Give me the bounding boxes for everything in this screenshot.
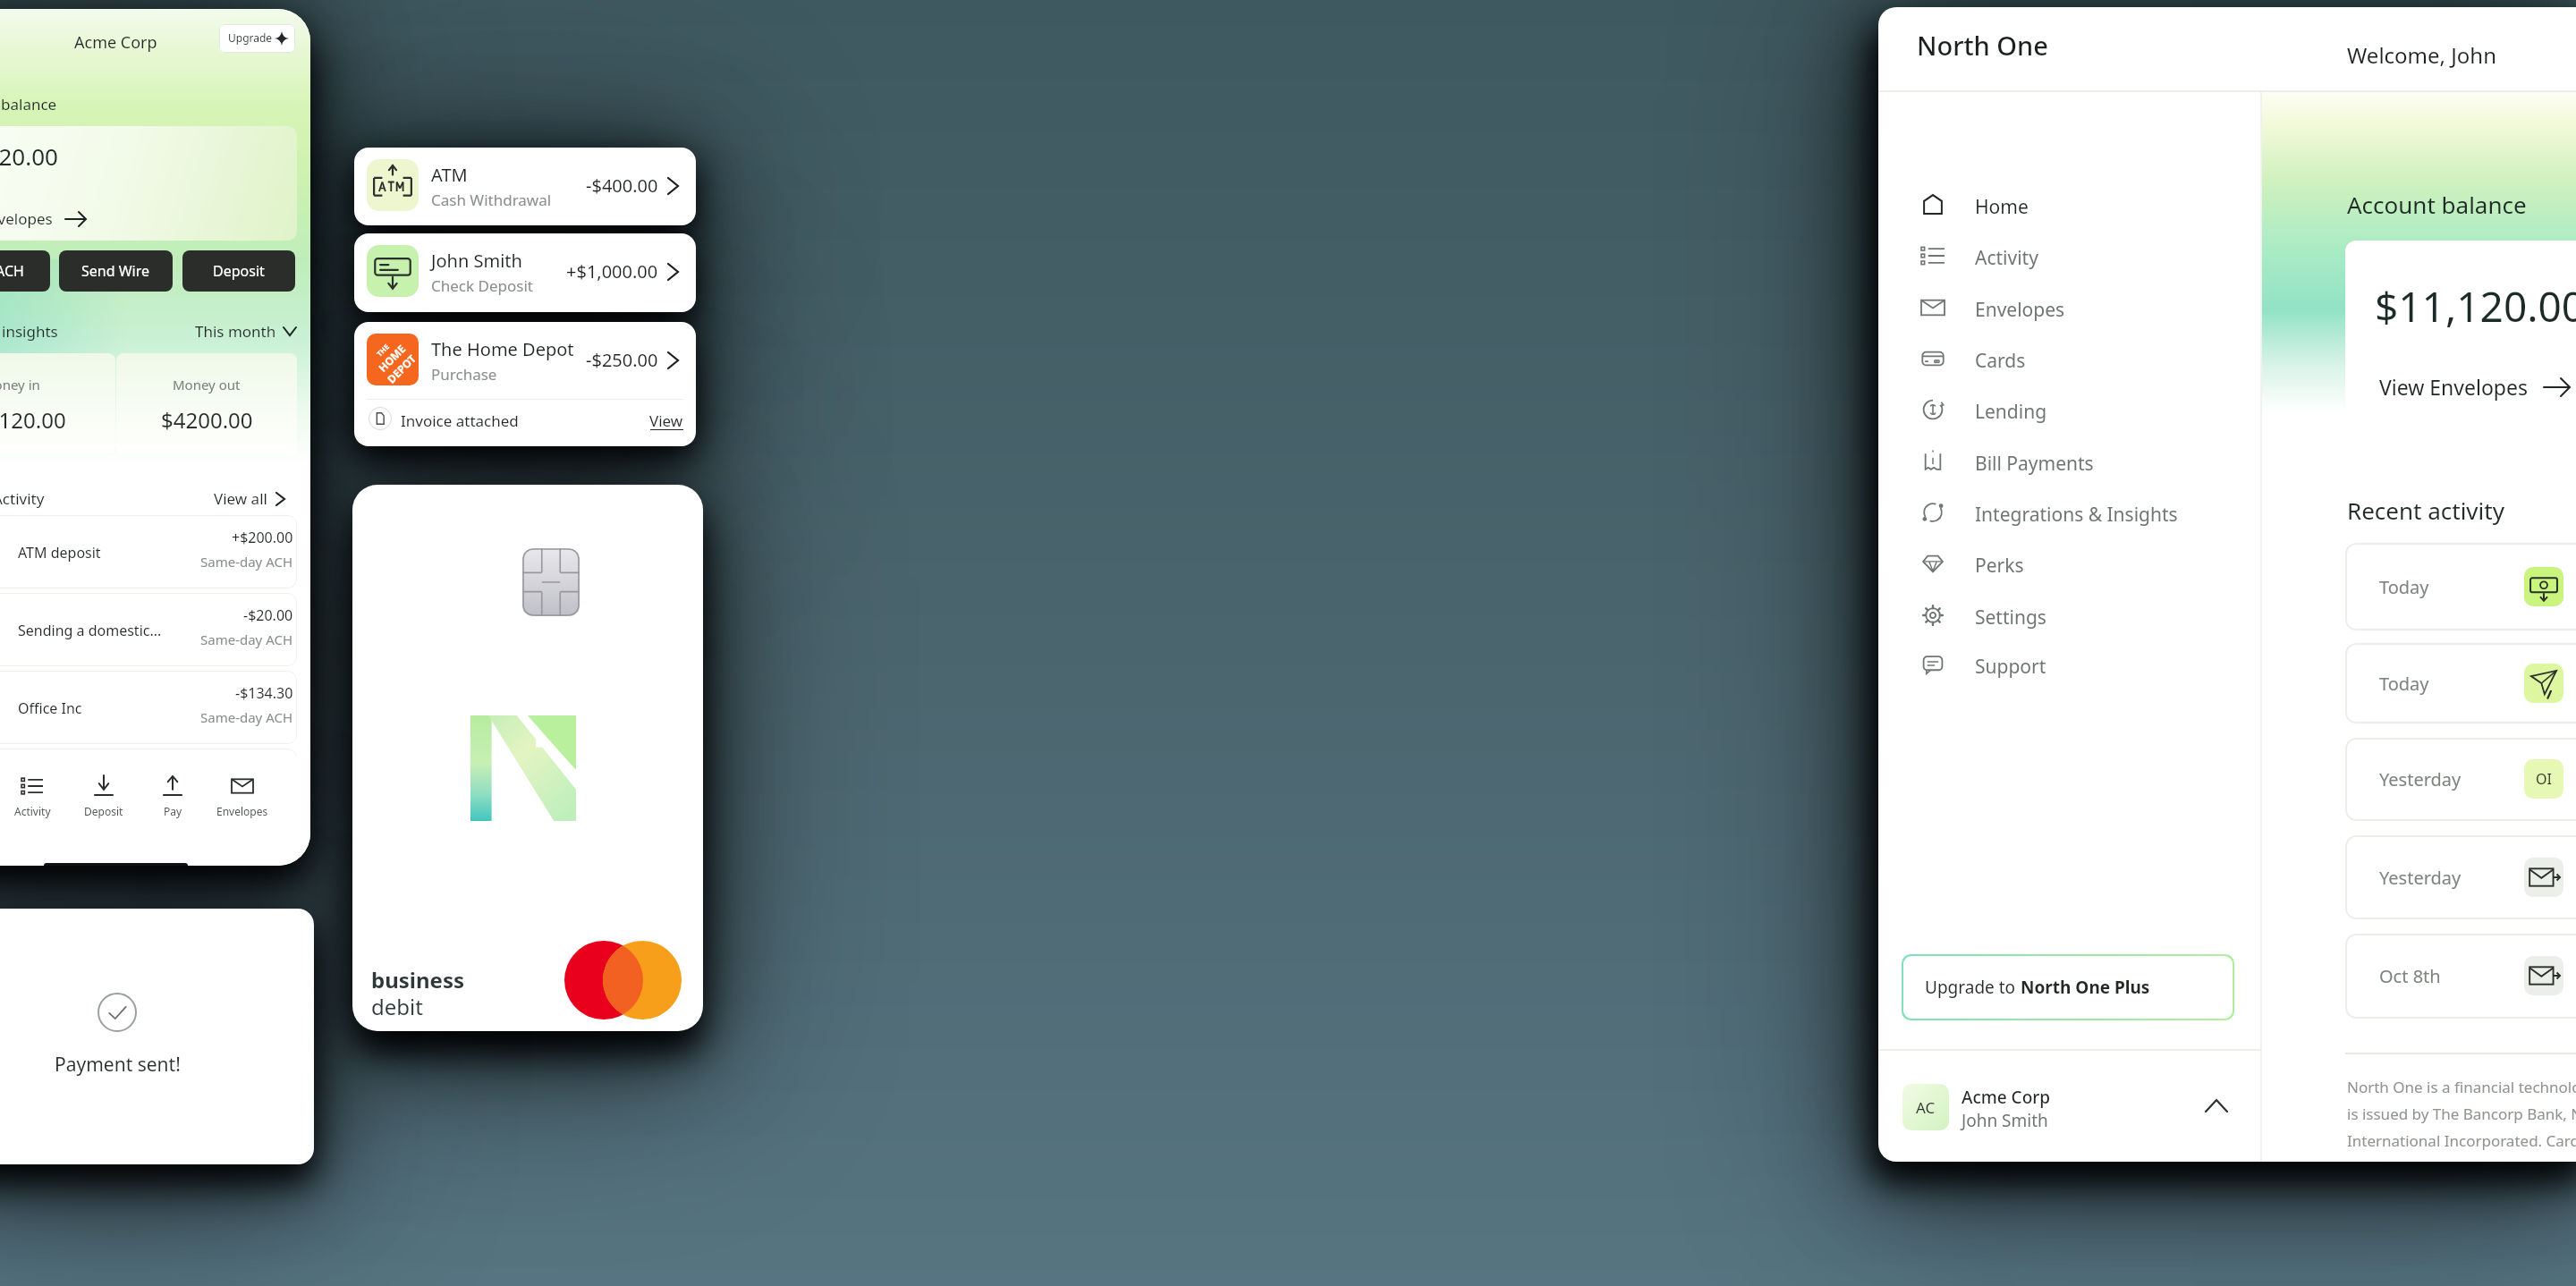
staticText: +$1,000.00 — [566, 259, 658, 283]
staticText: ATM — [431, 163, 468, 187]
staticText: Cards — [1975, 348, 2026, 374]
button[interactable]: View all — [214, 488, 284, 509]
button[interactable]: Envelopes — [208, 772, 276, 838]
staticText: Purchase — [431, 364, 497, 385]
staticText: Same-day ACH — [200, 630, 293, 648]
staticText: AC — [1916, 1097, 1936, 1118]
button[interactable]: Today — [2345, 643, 2576, 723]
staticText: Integrations & Insights — [1975, 502, 2178, 528]
button[interactable]: Integrations & Insights — [1905, 488, 2254, 537]
staticText: debit — [371, 992, 423, 1021]
button[interactable]: Oct 8th — [2345, 934, 2576, 1019]
staticText: OI — [2536, 769, 2552, 789]
staticText: Today — [2379, 672, 2429, 696]
staticText: North One Plus — [2021, 976, 2150, 999]
staticText: Same-day ACH — [200, 708, 293, 726]
staticText: THE — [374, 341, 391, 358]
staticText: Cash Withdrawal — [431, 190, 552, 210]
staticText: Recent activity — [2347, 495, 2504, 526]
button[interactable] — [644, 402, 689, 438]
button[interactable]: Pay — [139, 772, 207, 838]
staticText: DEPOT — [384, 351, 419, 385]
button[interactable]: View Envelopes — [2379, 373, 2571, 401]
staticText: -$134.30 — [235, 683, 293, 703]
staticText: Activity — [14, 804, 51, 818]
staticText: Yesterday — [2379, 866, 2462, 890]
button[interactable]: ATM — [354, 148, 696, 225]
staticText: Welcome, John — [2347, 40, 2496, 70]
staticText: -$400.00 — [586, 173, 658, 198]
staticText: $11,120.00 — [0, 140, 58, 172]
staticText: Envelopes — [1975, 297, 2065, 323]
staticText: Perks — [1975, 553, 2024, 579]
staticText: +$200.00 — [232, 528, 293, 547]
staticText: Deposit — [84, 804, 123, 818]
button[interactable]: Office Inc — [0, 671, 297, 744]
staticText: View — [649, 410, 683, 431]
staticText: Pay — [164, 804, 182, 818]
button[interactable]: Settings — [1905, 591, 2254, 639]
staticText: Account balance — [0, 94, 57, 114]
staticText: This month — [195, 321, 276, 342]
staticText: John Smith — [431, 249, 522, 273]
staticText: Same-day ACH — [200, 553, 293, 571]
staticText: Money in — [0, 376, 40, 393]
staticText: Home — [1975, 194, 2029, 220]
staticText: -$250.00 — [586, 348, 658, 372]
button[interactable]: Support — [1905, 640, 2254, 689]
button[interactable]: Perks — [1905, 539, 2254, 588]
button[interactable]: Today — [2345, 543, 2576, 630]
staticText: Acme Corp — [1962, 1086, 2051, 1109]
button[interactable]: Activity — [1905, 232, 2254, 280]
staticText: insights — [2, 321, 58, 342]
button[interactable]: Activity — [0, 772, 66, 838]
staticText: Upgrade to — [1925, 976, 2021, 999]
staticText: The Home Depot — [431, 337, 574, 361]
staticText: is issued by The Bancorp Bank, N. — [2347, 1104, 2576, 1124]
button[interactable]: ACH — [0, 250, 50, 292]
button[interactable]: Deposit — [70, 772, 138, 838]
button[interactable]: AC — [1878, 1050, 2261, 1162]
staticText: Bill Payments — [1975, 451, 2094, 477]
staticText: Upgrade — [228, 30, 273, 45]
staticText: John Smith — [1962, 1109, 2048, 1132]
button[interactable]: THE — [354, 322, 696, 446]
staticText: View Envelopes — [0, 208, 53, 229]
button[interactable]: Home — [1905, 181, 2254, 229]
staticText: Send Wire — [81, 261, 150, 281]
button[interactable]: This month — [195, 321, 296, 342]
staticText: Account balance — [2347, 189, 2527, 220]
staticText: Oct 8th — [2379, 964, 2441, 988]
staticText: Check Deposit — [431, 275, 533, 296]
staticText: business — [371, 965, 465, 994]
button[interactable]: Deposit — [182, 250, 295, 292]
button[interactable]: View Envelopes — [0, 208, 87, 229]
staticText: Yesterday — [2379, 767, 2462, 791]
button[interactable]: Cards — [1905, 334, 2254, 383]
staticText: Sending a domestic... — [18, 621, 162, 640]
staticText: Invoice attached — [401, 410, 519, 431]
staticText: Deposit — [213, 261, 265, 281]
staticText: View Envelopes — [2379, 373, 2528, 401]
button[interactable]: Yesterday — [2345, 835, 2576, 919]
button[interactable]: Upgrade to — [1902, 954, 2234, 1020]
staticText: International Incorporated. Card m — [2347, 1130, 2576, 1151]
staticText: $11,120.00 — [0, 405, 66, 435]
staticText: Activity — [0, 488, 45, 509]
staticText: Money out — [173, 376, 241, 393]
button[interactable]: ATM deposit — [0, 515, 297, 588]
staticText: Lending — [1975, 399, 2047, 425]
button[interactable]: Envelopes — [1905, 283, 2254, 332]
staticText: Payment sent! — [55, 1052, 181, 1078]
staticText: North One is a financial technolog — [2347, 1077, 2576, 1097]
button[interactable]: Lending — [1905, 385, 2254, 434]
button[interactable]: Sending a domestic... — [0, 593, 297, 666]
button[interactable]: Send Wire — [59, 250, 173, 292]
staticText: Support — [1975, 654, 2046, 680]
button[interactable]: Bill Payments — [1905, 437, 2254, 486]
button[interactable]: Yesterday — [2345, 738, 2576, 821]
button[interactable]: John Smith — [354, 233, 696, 312]
staticText: Office Inc — [18, 698, 82, 718]
staticText: Activity — [1975, 245, 2038, 271]
button[interactable]: Upgrade — [219, 24, 295, 53]
